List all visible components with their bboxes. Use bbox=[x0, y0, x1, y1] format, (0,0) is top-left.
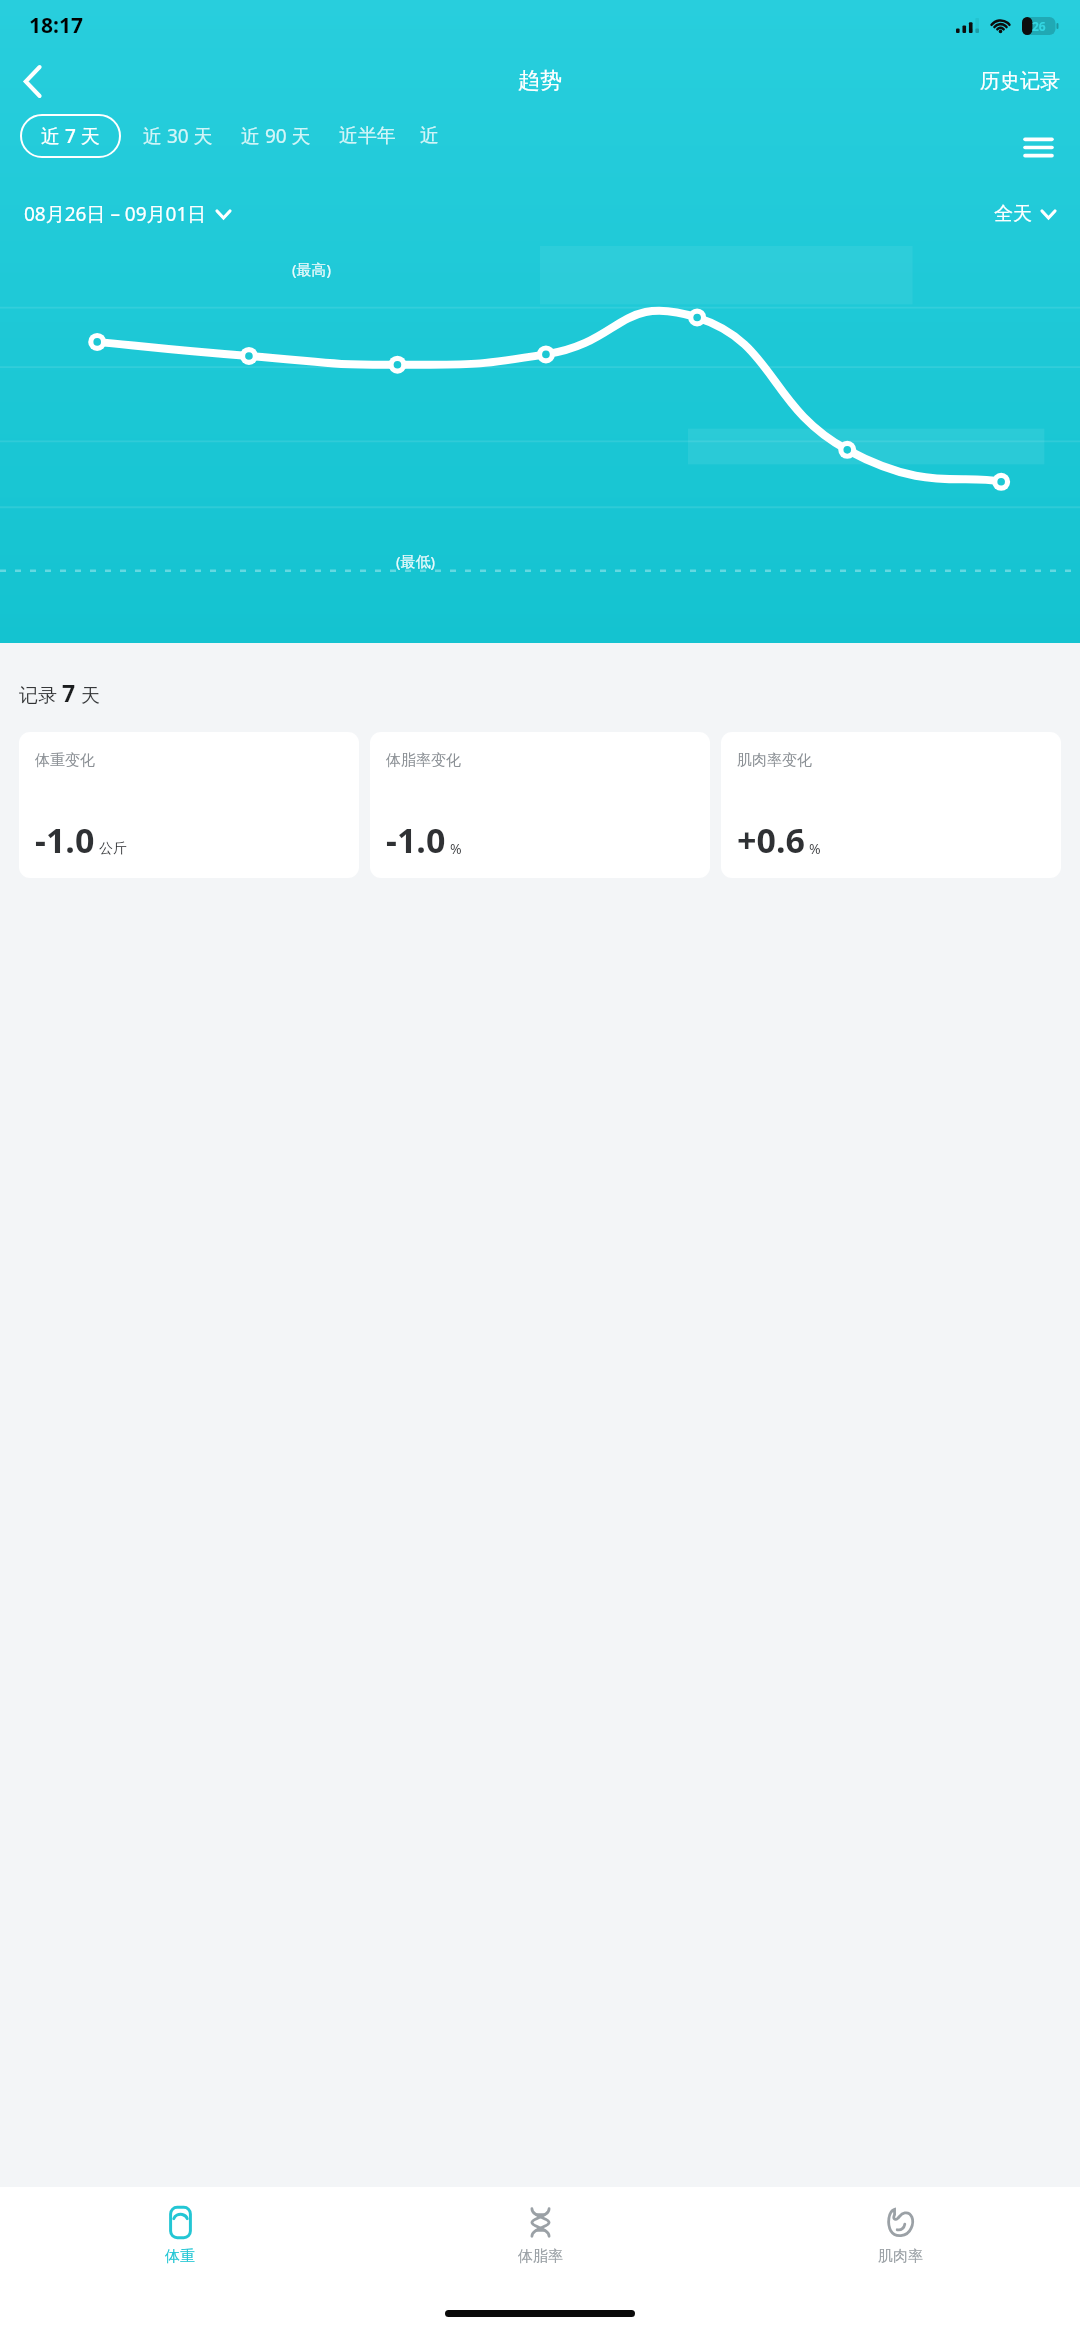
button[interactable]: 08月26日 – 09月01日 bbox=[20, 195, 235, 233]
staticText: -1.0 bbox=[35, 817, 95, 863]
staticText: 体重变化 bbox=[35, 751, 95, 770]
button[interactable]: 体脂率变化 bbox=[370, 732, 710, 878]
button[interactable]: 近 90 天 bbox=[227, 112, 325, 160]
button[interactable]: 近 7 天 bbox=[20, 114, 121, 158]
button[interactable]: 体重 bbox=[0, 2187, 360, 2285]
staticText: % bbox=[809, 839, 821, 858]
staticText: 记录 bbox=[19, 682, 62, 708]
button[interactable]: 肌肉率变化 bbox=[721, 732, 1061, 878]
staticText: 近 7 天 bbox=[41, 123, 100, 149]
staticText: +0.6 bbox=[737, 817, 805, 863]
staticText: 全天 bbox=[994, 202, 1032, 226]
button[interactable]: More options bbox=[1012, 121, 1064, 173]
staticText: 趋势 bbox=[518, 67, 562, 95]
button[interactable]: 近 bbox=[410, 113, 439, 159]
button[interactable]: 全天 bbox=[990, 196, 1060, 232]
button[interactable]: 近 30 天 bbox=[129, 112, 227, 160]
staticText: 体脂率变化 bbox=[386, 751, 461, 770]
staticText: 近 bbox=[420, 124, 439, 148]
button[interactable]: 近半年 bbox=[325, 113, 410, 159]
button[interactable]: 体重变化 bbox=[19, 732, 359, 878]
button[interactable]: 肌肉率 bbox=[720, 2187, 1080, 2285]
button[interactable]: 历史记录 bbox=[974, 61, 1066, 102]
staticText: 历史记录 bbox=[980, 69, 1060, 94]
staticText: 天 bbox=[76, 682, 100, 708]
staticText: 18:17 bbox=[29, 11, 83, 40]
staticText: 近 90 天 bbox=[241, 123, 311, 149]
staticText: 近半年 bbox=[339, 124, 396, 148]
staticText: (最低) bbox=[396, 551, 436, 571]
button[interactable]: 体脂率 bbox=[360, 2187, 720, 2285]
staticText: 7 bbox=[62, 677, 76, 708]
button[interactable]: Back bbox=[7, 56, 57, 106]
staticText: -1.0 bbox=[386, 817, 446, 863]
staticText: 近 30 天 bbox=[143, 123, 213, 149]
staticText: % bbox=[450, 839, 462, 858]
staticText: 体脂率 bbox=[518, 2247, 563, 2266]
staticText: 体重 bbox=[165, 2247, 195, 2266]
staticText: 公斤 bbox=[99, 840, 127, 858]
staticText: (最高) bbox=[292, 259, 332, 279]
staticText: 肌肉率变化 bbox=[737, 751, 812, 770]
staticText: 08月26日 – 09月01日 bbox=[24, 201, 207, 227]
staticText: 肌肉率 bbox=[878, 2247, 923, 2266]
staticText: 26 bbox=[1032, 18, 1046, 34]
